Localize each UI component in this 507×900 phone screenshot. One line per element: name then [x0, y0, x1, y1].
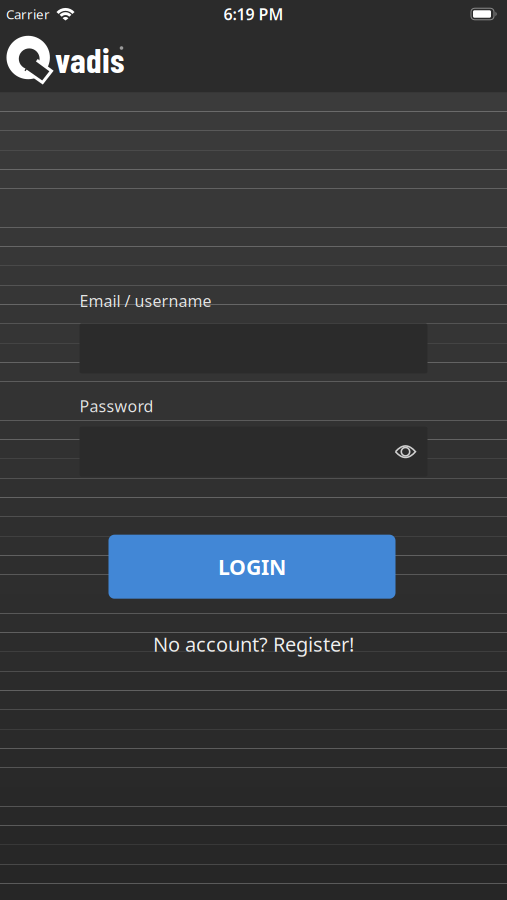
button[interactable]: LOGIN: [108, 535, 395, 599]
staticText: Carrier: [6, 5, 50, 23]
button[interactable]: Password: [79, 427, 427, 477]
staticText: No account? Register!: [153, 631, 354, 657]
staticText: LOGIN: [218, 552, 286, 581]
staticText: 6:19 PM: [223, 3, 283, 25]
button[interactable]: No account? Register!: [79, 631, 427, 657]
staticText: Email / username: [79, 290, 211, 311]
button[interactable]: Show password: [394, 445, 427, 459]
staticText: Password: [79, 395, 153, 417]
staticText: vadis: [55, 38, 124, 80]
